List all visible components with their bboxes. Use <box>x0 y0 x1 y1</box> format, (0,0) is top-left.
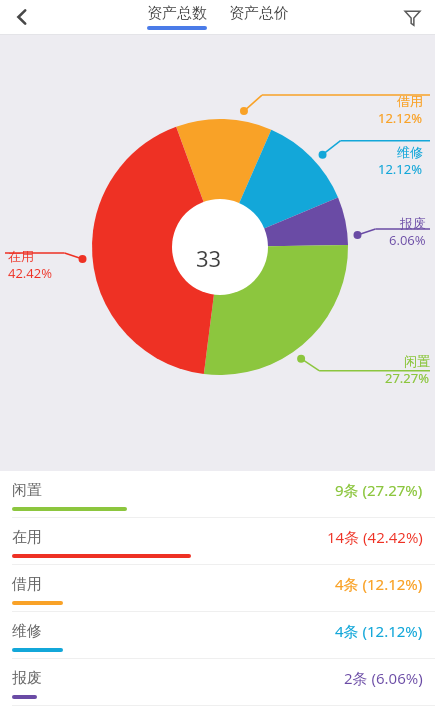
staticText: 报废 <box>12 669 42 688</box>
button[interactable]: 闲置 <box>0 471 435 518</box>
staticText: 12.12% <box>378 109 423 127</box>
staticText: 12.12% <box>378 160 423 178</box>
staticText: 资产总价 <box>229 4 289 23</box>
staticText: 14条 (42.42%) <box>327 527 423 547</box>
button[interactable]: 资产总数 <box>141 4 213 30</box>
staticText: 在用 <box>12 528 42 547</box>
button[interactable]: 在用 <box>0 518 435 565</box>
staticText: 2条 (6.06%) <box>344 668 423 688</box>
staticText: 4条 (12.12%) <box>335 621 423 641</box>
button[interactable]: Back <box>0 0 44 34</box>
staticText: 6.06% <box>389 231 426 249</box>
staticText: 33 <box>196 243 222 273</box>
staticText: 42.42% <box>8 264 53 282</box>
staticText: 维修 <box>397 144 423 160</box>
staticText: 报废 <box>400 215 426 231</box>
staticText: 资产总数 <box>147 4 207 23</box>
staticText: 在用 <box>8 248 34 264</box>
staticText: 27.27% <box>385 369 430 387</box>
staticText: 借用 <box>12 575 42 594</box>
button[interactable]: 资产总价 <box>223 4 295 30</box>
staticText: 闲置 <box>12 481 42 500</box>
button[interactable]: 借用 <box>0 565 435 612</box>
button[interactable]: Filter <box>389 0 435 34</box>
staticText: 4条 (12.12%) <box>335 574 423 594</box>
staticText: 维修 <box>12 622 42 641</box>
button[interactable]: 维修 <box>0 612 435 659</box>
staticText: 借用 <box>397 93 423 109</box>
staticText: 闲置 <box>404 353 430 369</box>
staticText: 9条 (27.27%) <box>335 480 423 500</box>
button[interactable]: 报废 <box>0 659 435 706</box>
